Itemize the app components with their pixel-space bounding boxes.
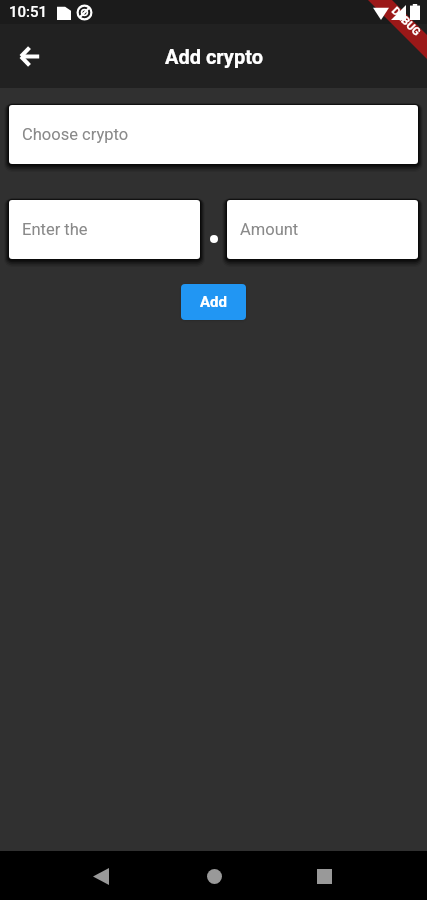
button[interactable]: Recent apps bbox=[300, 852, 348, 900]
staticText: Enter the bbox=[22, 220, 88, 239]
staticText: Add crypto bbox=[165, 45, 263, 68]
button[interactable]: Add bbox=[181, 284, 246, 320]
button[interactable]: Enter the bbox=[9, 200, 200, 259]
button[interactable]: Home bbox=[190, 852, 238, 900]
staticText: Amount bbox=[240, 220, 299, 239]
staticText: Add bbox=[200, 293, 227, 311]
button[interactable]: Amount bbox=[227, 200, 418, 259]
button[interactable]: Choose crypto bbox=[9, 105, 418, 164]
button[interactable]: Back bbox=[77, 852, 125, 900]
staticText: DEBUG bbox=[389, 4, 423, 39]
staticText: Choose crypto bbox=[22, 125, 129, 144]
staticText: 10:51 bbox=[9, 3, 48, 21]
button[interactable]: Navigate back bbox=[5, 32, 53, 80]
